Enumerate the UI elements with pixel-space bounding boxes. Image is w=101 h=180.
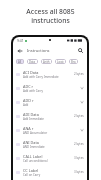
staticText: Add with Carry Immediate xyxy=(23,75,59,79)
staticText: Add with Carry xyxy=(23,89,44,93)
staticText: AND Accumulator xyxy=(23,131,48,135)
staticText: 3 bytes xyxy=(74,156,84,160)
button[interactable]: ADI Data xyxy=(13,109,87,123)
button[interactable]: CALL Label xyxy=(13,151,87,165)
staticText: CALL Label xyxy=(23,154,43,159)
staticText: Arith xyxy=(43,60,50,64)
button[interactable]: ADC r xyxy=(13,81,87,95)
staticText: 2 bytes xyxy=(74,114,84,118)
staticText: ADI Data xyxy=(23,112,39,117)
staticText: 9:41 xyxy=(17,38,24,43)
button[interactable]: Data xyxy=(27,59,38,64)
staticText: Add Immediate xyxy=(23,117,44,121)
staticText: ANI Data xyxy=(23,140,39,145)
staticText: Add xyxy=(23,103,29,107)
staticText: Logic xyxy=(57,60,64,64)
staticText: ACI Data xyxy=(23,70,39,75)
staticText: instructions xyxy=(31,16,70,25)
button[interactable]: ANA r xyxy=(13,123,87,137)
staticText: Call on Carry xyxy=(23,173,41,177)
button[interactable]: Search xyxy=(76,46,85,55)
button[interactable]: ADD r xyxy=(13,95,87,109)
staticText: 2 bytes xyxy=(74,142,84,146)
staticText: Data xyxy=(29,60,36,64)
staticText: All xyxy=(18,60,22,64)
button[interactable]: ACI Data xyxy=(13,67,87,81)
staticText: Instructions xyxy=(27,48,50,53)
staticText: Access all 8085 xyxy=(26,7,75,16)
button[interactable]: Logic xyxy=(55,59,66,64)
staticText: ADC r xyxy=(23,84,34,89)
staticText: ANA r xyxy=(23,126,34,131)
staticText: 2 bytes xyxy=(74,72,84,76)
button[interactable]: CC Label xyxy=(13,165,87,179)
button[interactable]: Arith xyxy=(41,59,52,64)
button[interactable]: ANI Data xyxy=(13,137,87,151)
button[interactable]: Bra xyxy=(69,59,78,64)
button[interactable]: Back xyxy=(15,46,24,55)
staticText: 3 bytes xyxy=(74,170,84,174)
staticText: Bra xyxy=(71,60,76,64)
staticText: ADD r xyxy=(23,98,34,103)
button[interactable]: All xyxy=(16,59,24,64)
staticText: AND Immediate xyxy=(23,145,45,149)
staticText: Call unconditional xyxy=(23,159,48,163)
staticText: CC Label xyxy=(23,168,39,173)
